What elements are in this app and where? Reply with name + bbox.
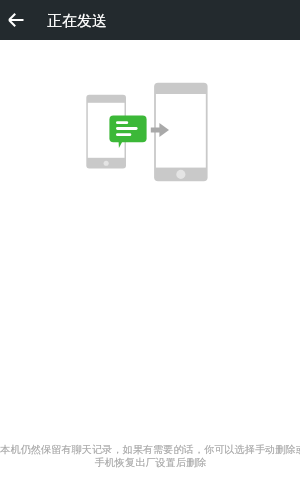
staticText: 本机仍然保留有聊天记录，如果有需要的话，你可以选择手动删除或 bbox=[0, 443, 300, 456]
staticText: 手机恢复出厂设置后删除 bbox=[94, 456, 207, 469]
staticText: 正在发送 bbox=[47, 12, 107, 31]
button[interactable]: Back bbox=[0, 0, 33, 40]
